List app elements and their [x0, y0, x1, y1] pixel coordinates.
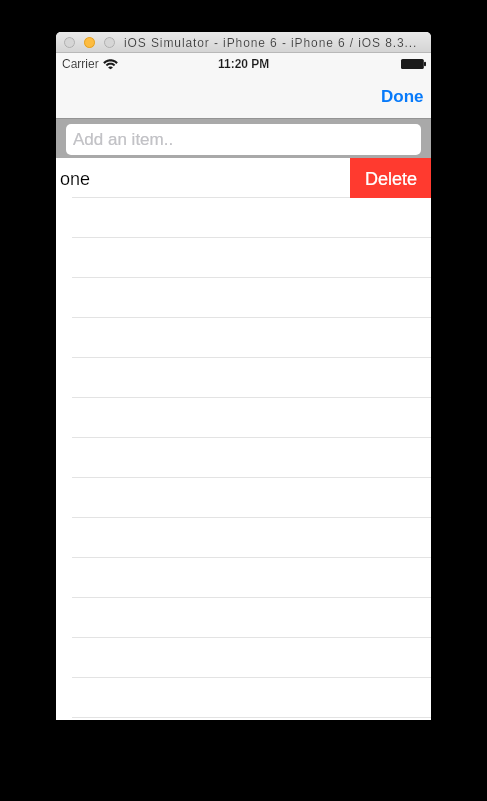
- button[interactable]: [56, 198, 431, 238]
- button[interactable]: [56, 398, 431, 438]
- button[interactable]: [56, 238, 431, 278]
- button[interactable]: Add an item..: [66, 124, 421, 155]
- button[interactable]: [56, 678, 431, 718]
- other: Wi-Fi signal: [104, 59, 117, 69]
- button[interactable]: [56, 438, 431, 478]
- staticText: Done: [381, 87, 424, 106]
- button[interactable]: [56, 318, 431, 358]
- button[interactable]: Done: [367, 78, 431, 113]
- button[interactable]: [56, 638, 431, 678]
- button[interactable]: [56, 478, 431, 518]
- staticText: 11:20 PM: [218, 57, 270, 70]
- button[interactable]: [56, 278, 431, 318]
- button[interactable]: Delete: [350, 158, 431, 198]
- button[interactable]: Close window: [64, 37, 75, 48]
- button[interactable]: [56, 558, 431, 598]
- staticText: Delete: [365, 169, 418, 189]
- other: Battery full: [401, 59, 426, 69]
- staticText: one: [60, 169, 91, 189]
- button[interactable]: [56, 598, 431, 638]
- staticText: iOS Simulator - iPhone 6 - iPhone 6 / iO…: [124, 36, 418, 49]
- staticText: Carrier: [62, 57, 99, 70]
- staticText: Add an item..: [73, 130, 174, 149]
- button[interactable]: Minimise window: [84, 37, 95, 48]
- button[interactable]: [56, 358, 431, 398]
- button[interactable]: one: [56, 158, 431, 198]
- button[interactable]: [56, 518, 431, 558]
- button[interactable]: Zoom window: [104, 37, 115, 48]
